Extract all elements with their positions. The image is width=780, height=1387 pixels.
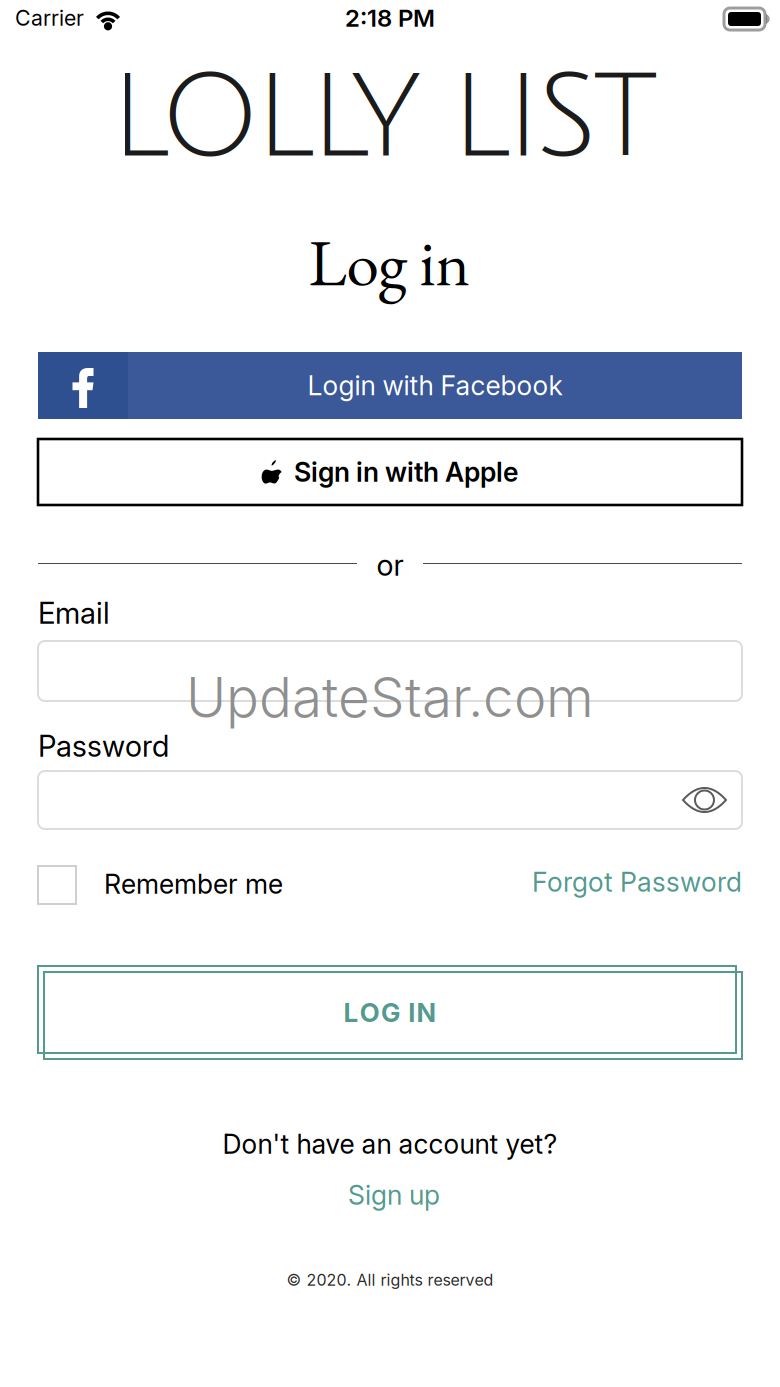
staticText: N	[416, 997, 436, 1028]
button[interactable]: Sign up	[244, 1172, 544, 1218]
staticText: Forgot Password	[532, 866, 742, 898]
staticText: © 2020. All rights reserved	[286, 1270, 493, 1290]
staticText: Password	[38, 728, 169, 764]
staticText: Login with Facebook	[307, 369, 562, 402]
staticText: 2:18 PM	[345, 3, 435, 32]
button[interactable]: Forgot Password	[516, 858, 742, 906]
staticText: Log in	[308, 219, 469, 305]
button[interactable]: Show password	[683, 786, 726, 814]
staticText: UpdateStar.com	[186, 664, 594, 730]
button[interactable]: Login with Facebook	[38, 352, 742, 419]
staticText: Carrier	[15, 5, 84, 31]
button[interactable]: Remember me	[38, 858, 338, 910]
staticText: G	[381, 997, 400, 1028]
staticText: Remember me	[104, 868, 283, 900]
staticText: or	[376, 547, 403, 583]
staticText: Don't have an account yet?	[222, 1128, 557, 1160]
button[interactable]: Sign in with Apple	[38, 439, 742, 505]
staticText: L	[343, 997, 358, 1028]
staticText: LOLLY LIST	[109, 56, 658, 181]
staticText: O	[360, 997, 380, 1028]
button[interactable]: L	[38, 966, 742, 1059]
staticText: Email	[38, 595, 110, 631]
staticText: Sign up	[348, 1179, 440, 1211]
staticText: Sign in with Apple	[294, 456, 518, 488]
staticText: I	[408, 997, 415, 1028]
